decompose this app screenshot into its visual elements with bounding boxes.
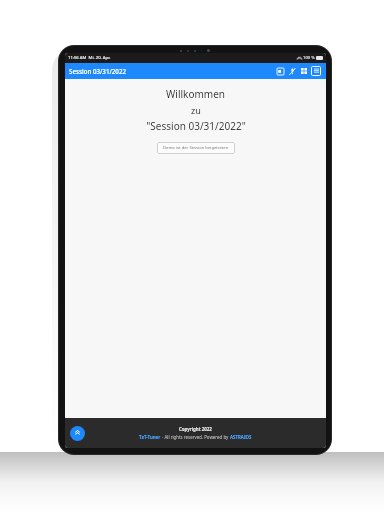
staticText: Copyright 2022 xyxy=(179,426,212,432)
staticText: 100 % xyxy=(303,55,315,61)
staticText: zu xyxy=(191,104,201,116)
staticText: Demo ist der Session beigetreten xyxy=(163,145,229,151)
staticText: Willkommen xyxy=(166,87,225,101)
staticText: · All rights reserved. Powered by xyxy=(161,434,230,440)
button[interactable]: Share screen xyxy=(274,65,286,77)
button[interactable]: TxT-Tuner xyxy=(139,434,161,440)
staticText: Session 03/31/2022 xyxy=(69,67,126,75)
staticText: "Session 03/31/2022" xyxy=(146,119,246,133)
staticText: 11:56 AM Mi. 20. Apr. xyxy=(68,55,111,61)
button[interactable]: Grid view xyxy=(298,65,310,77)
button[interactable]: Menu xyxy=(310,65,322,77)
button[interactable]: Mute microphone xyxy=(286,65,298,77)
button[interactable]: Demo ist der Session beigetreten xyxy=(157,142,235,154)
button[interactable]: ASTRAIOS xyxy=(230,434,252,440)
button[interactable]: Scroll to top xyxy=(70,426,85,441)
